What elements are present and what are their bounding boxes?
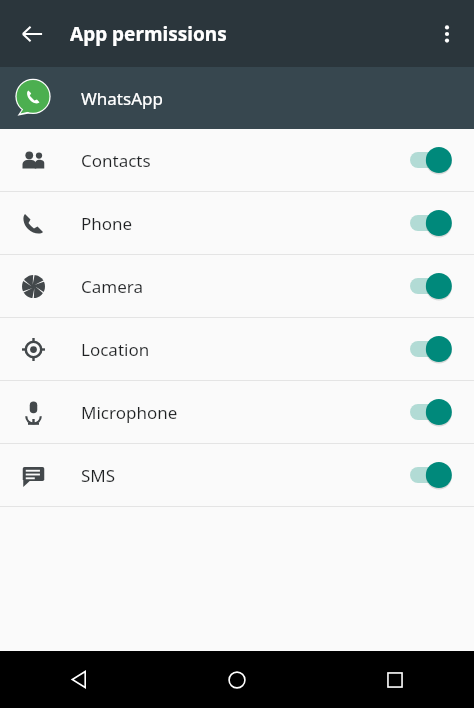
staticText: Camera xyxy=(81,275,406,298)
button[interactable]: Microphone permission toggle xyxy=(406,390,464,434)
button[interactable]: Phone permission toggle xyxy=(406,201,464,245)
staticText: App permissions xyxy=(70,21,227,47)
button[interactable]: Back xyxy=(0,651,158,708)
button[interactable]: Home xyxy=(158,651,316,708)
button[interactable]: Contacts permission toggle xyxy=(406,138,464,182)
button[interactable]: Phone xyxy=(0,192,474,254)
button[interactable]: WhatsApp xyxy=(0,67,474,129)
button[interactable]: Contacts xyxy=(0,129,474,191)
staticText: Location xyxy=(81,338,406,361)
staticText: Microphone xyxy=(81,401,406,424)
staticText: WhatsApp xyxy=(81,87,163,110)
button[interactable]: Microphone xyxy=(0,381,474,443)
button[interactable]: Back xyxy=(8,10,56,58)
button[interactable]: Camera permission toggle xyxy=(406,264,464,308)
button[interactable]: Location permission toggle xyxy=(406,327,464,371)
staticText: Contacts xyxy=(81,149,406,172)
staticText: Phone xyxy=(81,212,406,235)
button[interactable]: SMS xyxy=(0,444,474,506)
button[interactable]: SMS permission toggle xyxy=(406,453,464,497)
button[interactable]: Location xyxy=(0,318,474,380)
button[interactable]: More options xyxy=(424,11,470,57)
button[interactable]: Recent apps xyxy=(316,651,474,708)
button[interactable]: Camera xyxy=(0,255,474,317)
staticText: SMS xyxy=(81,464,406,487)
